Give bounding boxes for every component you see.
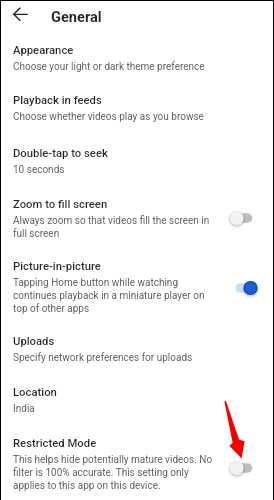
staticText: Restricted Mode [13,437,97,450]
button[interactable]: Picture-in-picture [1,253,273,327]
button[interactable]: Back [6,1,38,31]
button[interactable]: Zoom to fill screen [1,190,273,252]
staticText: India [13,403,35,415]
staticText: Appearance [13,44,74,57]
button[interactable]: Restricted Mode [1,430,273,500]
staticText: Location [13,386,57,399]
button[interactable]: Switch off [227,458,259,478]
button[interactable]: Appearance [1,38,273,86]
staticText: Playback in feeds [13,94,102,107]
staticText: Tapping Home button while watching conti… [13,277,218,315]
staticText: Picture-in-picture [13,260,101,273]
staticText: Always zoom so that videos fill the scre… [13,215,221,240]
staticText: General [51,8,102,25]
staticText: Uploads [13,335,55,348]
button[interactable]: Switch on [227,278,259,298]
staticText: Choose your light or dark theme preferen… [13,61,205,73]
button[interactable]: Double-tap to seek [1,138,273,188]
staticText: Zoom to fill screen [13,198,108,211]
button[interactable]: Location [1,379,273,429]
staticText: This helps hide potentially mature video… [13,454,213,492]
staticText: 10 seconds [13,164,65,176]
button[interactable]: Playback in feeds [1,86,273,136]
staticText: Double-tap to seek [13,147,108,160]
button[interactable]: Uploads [1,328,273,378]
staticText: Specify network preferences for uploads [13,352,193,364]
button[interactable]: Switch off [227,208,259,228]
staticText: Choose whether videos play as you browse [13,111,204,123]
